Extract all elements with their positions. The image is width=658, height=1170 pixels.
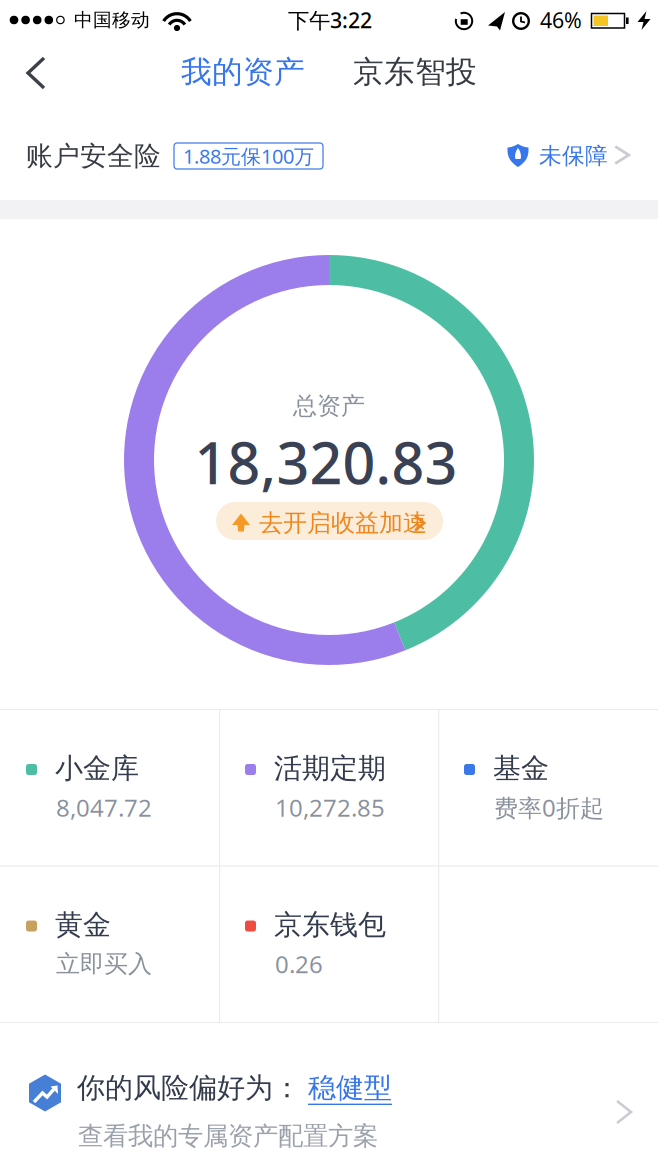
staticText: 46% (540, 6, 582, 34)
button[interactable]: 去开启收益加速 (216, 502, 443, 540)
staticText: 18,320.83 (194, 424, 457, 500)
staticText: 我的资产 (181, 53, 305, 91)
staticText: 京东钱包 (274, 908, 386, 942)
staticText: 0.26 (275, 948, 323, 980)
button[interactable]: 活期定期 (219, 710, 438, 865)
staticText: 立即买入 (56, 949, 152, 979)
staticText: 查看我的专属资产配置方案 (78, 1120, 378, 1151)
button[interactable]: Back (20, 55, 56, 91)
button[interactable]: 你的风险偏好为： (0, 1023, 658, 1170)
button[interactable]: 账户安全险 (0, 110, 658, 200)
staticText: 1.88元保100万 (183, 143, 314, 169)
staticText: 费率0折起 (494, 792, 604, 823)
staticText: 去开启收益加速 (259, 508, 427, 538)
staticText: 基金 (493, 751, 549, 786)
staticText: 稳健型 (308, 1071, 392, 1105)
staticText: 8,047.72 (56, 792, 152, 823)
staticText: 未保障 (539, 142, 608, 170)
button[interactable]: 我的资产 (181, 53, 305, 91)
button[interactable]: 基金 (438, 710, 657, 865)
staticText: 10,272.85 (275, 792, 385, 823)
button[interactable]: 京东钱包 (219, 866, 438, 1021)
staticText: 京东智投 (353, 53, 477, 91)
staticText: 小金库 (55, 751, 139, 786)
button[interactable]: 京东智投 (353, 53, 477, 91)
staticText: 总资产 (293, 391, 365, 421)
staticText: 下午3:22 (288, 6, 372, 34)
button[interactable]: 小金库 (0, 710, 219, 865)
staticText: 账户安全险 (26, 140, 161, 172)
staticText: 中国移动 (74, 8, 150, 31)
staticText: 你的风险偏好为： (77, 1071, 301, 1105)
button[interactable]: 黄金 (0, 866, 219, 1021)
staticText: 活期定期 (274, 751, 386, 786)
staticText: 黄金 (55, 908, 111, 942)
